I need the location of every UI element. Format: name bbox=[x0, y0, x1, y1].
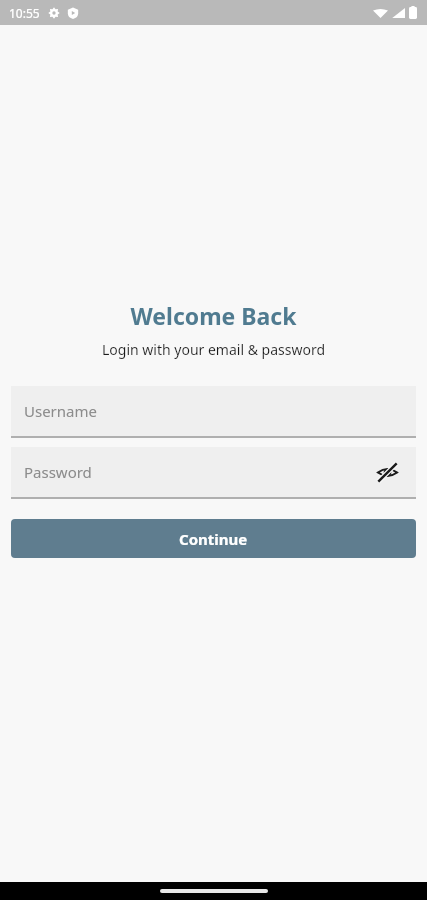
button[interactable]: Username bbox=[11, 386, 416, 438]
button[interactable]: Password bbox=[11, 447, 416, 499]
button[interactable]: Continue bbox=[11, 519, 416, 558]
staticText: Password bbox=[24, 462, 92, 482]
staticText: Username bbox=[24, 401, 97, 421]
staticText: Login with your email & password bbox=[0, 340, 427, 359]
button[interactable]: Show password bbox=[372, 457, 402, 487]
staticText: Continue bbox=[179, 529, 248, 549]
staticText: Welcome Back bbox=[0, 300, 427, 331]
staticText: 10:55 bbox=[9, 5, 40, 21]
